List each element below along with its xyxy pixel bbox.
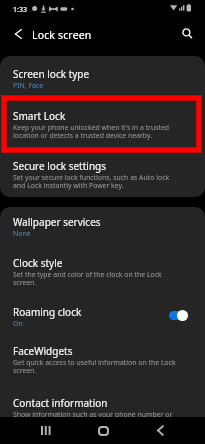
staticText: On <box>13 319 23 328</box>
button[interactable]: Contact information <box>0 387 205 417</box>
button[interactable]: Smart Lock <box>0 100 205 150</box>
button[interactable]: Clock style <box>0 247 205 296</box>
button[interactable]: Secure lock settings <box>0 150 205 197</box>
button[interactable]: Recent apps <box>29 417 63 444</box>
button[interactable]: Screen lock type <box>0 56 205 100</box>
staticText: FaceWidgets <box>13 344 73 358</box>
staticText: None <box>13 229 31 238</box>
staticText: Set your secure lock functions, such as … <box>13 173 177 190</box>
staticText: Lock screen <box>32 28 92 42</box>
button[interactable]: Home <box>86 417 120 444</box>
staticText: PIN, Face <box>13 81 44 90</box>
button[interactable]: Wallpaper services <box>0 207 205 247</box>
staticText: Smart Lock <box>13 109 66 123</box>
button[interactable]: Navigate up <box>6 22 30 46</box>
staticText: Screen lock type <box>13 67 90 81</box>
staticText: Contact information <box>13 396 108 410</box>
button[interactable]: Search <box>175 21 199 45</box>
staticText: 1:33 <box>13 5 27 15</box>
staticText: Wallpaper services <box>13 215 101 229</box>
staticText: Set the type and color of the clock on t… <box>13 270 177 287</box>
button[interactable]: FaceWidgets <box>0 335 205 387</box>
button[interactable]: Back <box>143 417 177 444</box>
staticText: Get quick access to useful information o… <box>13 358 177 375</box>
staticText: Roaming clock <box>13 305 82 319</box>
staticText: Clock style <box>13 256 63 270</box>
staticText: Show information such as your phone numb… <box>13 410 177 417</box>
staticText: Keep your phone unlocked when it's in a … <box>13 123 177 140</box>
button[interactable]: Roaming clock <box>0 296 205 335</box>
staticText: Secure lock settings <box>13 159 106 173</box>
